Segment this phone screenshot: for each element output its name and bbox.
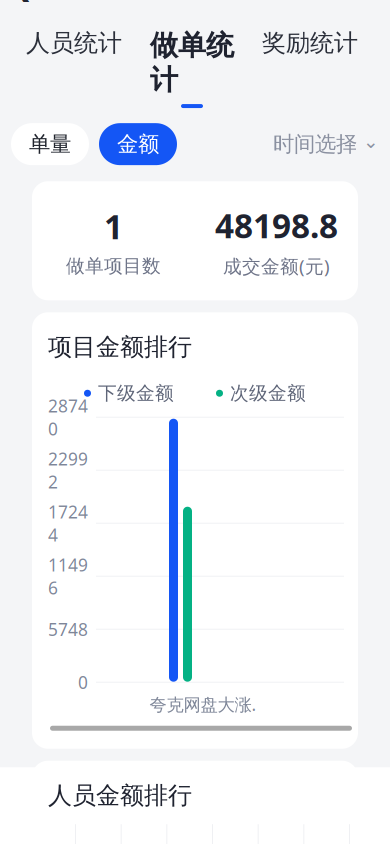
button[interactable]: 奖励统计 [248,24,372,71]
staticText: 11496 [48,553,88,599]
button[interactable]: 做单统计 [136,24,248,110]
staticText: 夸克网盘大涨. [149,693,256,716]
staticText: 1 [104,204,123,248]
button[interactable]: 单量 [11,123,89,165]
staticText: 下级金额 [98,382,174,405]
staticText: 单量 [29,131,71,157]
button[interactable]: 人员统计 [12,24,136,71]
staticText: 奖励统计 [262,28,358,58]
staticText: 成交金额(元) [223,253,330,278]
staticText: 时间选择 [273,131,357,157]
staticText: 0 [78,671,88,694]
staticText: 金额 [117,131,159,157]
staticText: ❮ [11,0,33,1]
staticText: 次级金额 [230,382,306,405]
staticText: 人员统计 [26,28,122,58]
staticText: 28740 [48,394,88,440]
staticText: 17244 [48,500,88,546]
staticText: 做单统计 [150,28,234,97]
staticText: 5748 [48,618,88,641]
staticText: 48198.8 [215,203,338,248]
button[interactable]: 金额 [99,123,177,165]
button[interactable]: 时间选择 [273,123,379,165]
staticText: 项目金额排行 [48,332,192,362]
staticText: 22992 [48,447,88,493]
button[interactable]: Back [0,0,44,8]
staticText: 人员金额排行 [48,781,192,810]
staticText: 做单项目数 [66,254,161,277]
staticText: ⌄ [363,131,379,152]
